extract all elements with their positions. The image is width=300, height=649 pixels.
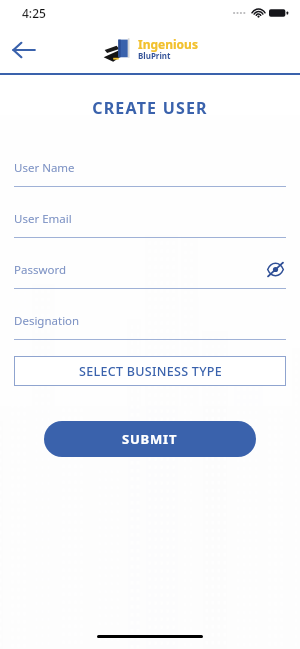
staticText: BluPrint xyxy=(138,50,171,61)
staticText: SELECT BUSINESS TYPE xyxy=(79,363,222,380)
staticText: Password xyxy=(14,262,67,278)
staticText: CREATE USER xyxy=(0,97,300,119)
button[interactable]: Designation xyxy=(14,294,286,340)
button[interactable]: SELECT BUSINESS TYPE xyxy=(14,356,286,386)
staticText: 4:25 xyxy=(22,5,46,21)
button[interactable]: Password xyxy=(14,243,286,289)
staticText: User Email xyxy=(14,211,72,227)
staticText: Designation xyxy=(14,313,80,329)
staticText: Ingenious xyxy=(138,36,198,52)
button[interactable]: Toggle password visibility xyxy=(264,258,286,280)
staticText: SUBMIT xyxy=(122,430,178,448)
staticText: User Name xyxy=(14,160,75,176)
button[interactable]: SUBMIT xyxy=(44,421,256,457)
button[interactable]: Back xyxy=(2,31,46,69)
button[interactable]: User Email xyxy=(14,192,286,238)
button[interactable]: User Name xyxy=(14,141,286,187)
